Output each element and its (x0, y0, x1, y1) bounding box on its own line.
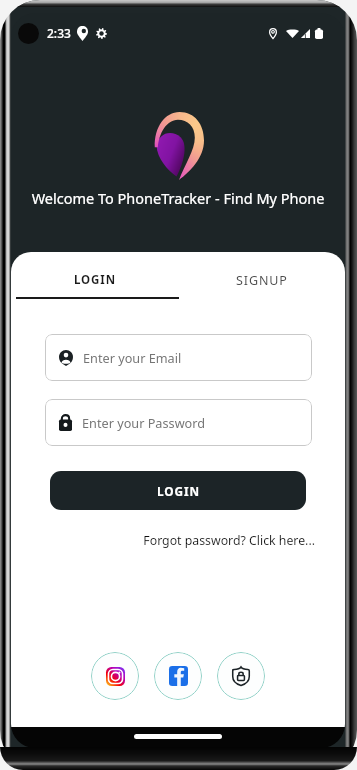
staticText: LOGIN (157, 483, 200, 499)
staticText: LOGIN (74, 272, 116, 288)
button[interactable]: LOGIN (11, 267, 178, 293)
button[interactable]: Privacy (217, 652, 265, 700)
button[interactable]: Instagram (91, 652, 139, 700)
staticText: Enter your Password (82, 414, 206, 431)
staticText: Forgot password? Click here... (11, 532, 315, 549)
staticText: Welcome To PhoneTracker - Find My Phone (11, 188, 345, 208)
staticText: 2:33 (47, 25, 71, 41)
staticText: Enter your Email (83, 349, 182, 366)
button[interactable]: Facebook (154, 652, 202, 700)
staticText: SIGNUP (236, 272, 288, 289)
button[interactable]: LOGIN (50, 471, 306, 510)
button[interactable]: Enter your Email (45, 334, 312, 381)
button[interactable]: SIGNUP (178, 267, 345, 293)
button[interactable]: Enter your Password (45, 399, 312, 446)
